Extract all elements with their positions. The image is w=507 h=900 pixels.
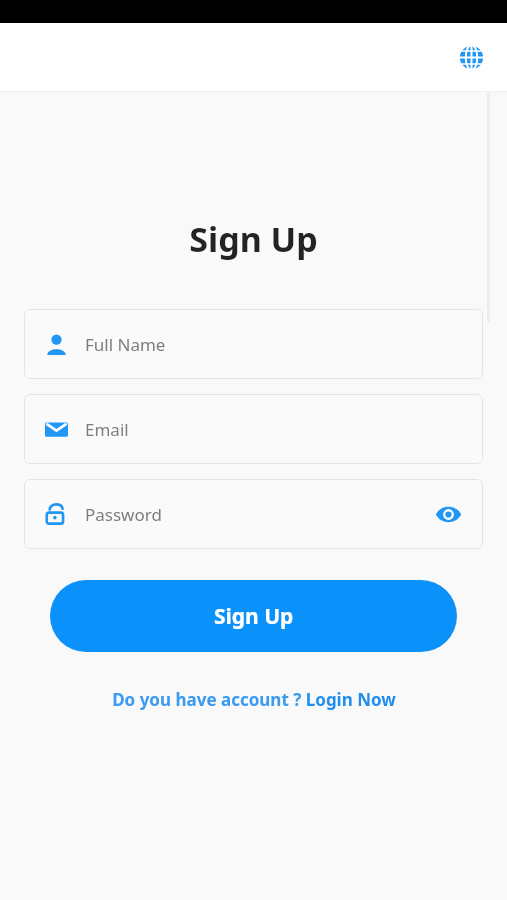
button[interactable]: Change language [453, 39, 489, 75]
button[interactable]: Full Name [24, 309, 483, 379]
staticText: Do you have account ? Login Now [112, 688, 396, 711]
staticText: Password [85, 503, 433, 526]
button[interactable]: Show password [433, 499, 463, 529]
button[interactable]: Do you have account ? Login Now [0, 688, 507, 711]
staticText: Email [85, 418, 463, 441]
button[interactable]: Email [24, 394, 483, 464]
staticText: Sign Up [214, 602, 294, 631]
staticText: Full Name [85, 333, 463, 356]
button[interactable]: Password [24, 479, 483, 549]
staticText: Sign Up [0, 216, 507, 262]
button[interactable]: Sign Up [50, 580, 457, 652]
